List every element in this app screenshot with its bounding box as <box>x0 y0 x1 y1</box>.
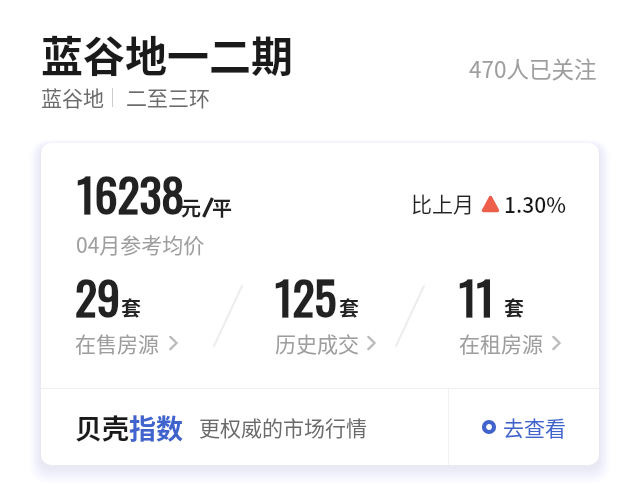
button[interactable]: 去查看 贝壳指数 <box>449 389 599 465</box>
staticText: 二至三环 <box>126 82 210 112</box>
staticText: 16238 <box>77 159 185 227</box>
staticText: 历史成交 <box>275 328 359 358</box>
staticText: 在租房源 <box>459 328 543 358</box>
staticText: 套 <box>504 293 524 322</box>
staticText: 470人已关注 <box>469 52 597 85</box>
staticText: 在售房源 <box>75 328 159 358</box>
staticText: 去查看 <box>503 412 566 442</box>
staticText: 元 <box>181 193 201 222</box>
button[interactable]: 125 <box>275 262 381 355</box>
staticText: 套 <box>121 293 141 322</box>
button[interactable]: 11 <box>459 262 566 355</box>
staticText: 125 <box>275 262 337 330</box>
staticText: 蓝谷地 <box>41 82 104 112</box>
staticText: 贝壳指数 <box>75 408 183 447</box>
button[interactable]: 贝壳指数 <box>75 389 448 465</box>
staticText: 29 <box>75 262 121 330</box>
staticText: 11 <box>459 262 494 330</box>
staticText: 1.30% <box>504 189 566 219</box>
staticText: 04月参考均价 <box>76 229 205 259</box>
staticText: 更权威的市场行情 <box>199 412 367 442</box>
staticText: 蓝谷地一二期 <box>41 23 294 84</box>
staticText: 比上月 <box>411 188 474 218</box>
staticText: 平 <box>212 193 232 222</box>
staticText: 套 <box>339 293 359 322</box>
button[interactable]: 29 <box>75 262 183 355</box>
